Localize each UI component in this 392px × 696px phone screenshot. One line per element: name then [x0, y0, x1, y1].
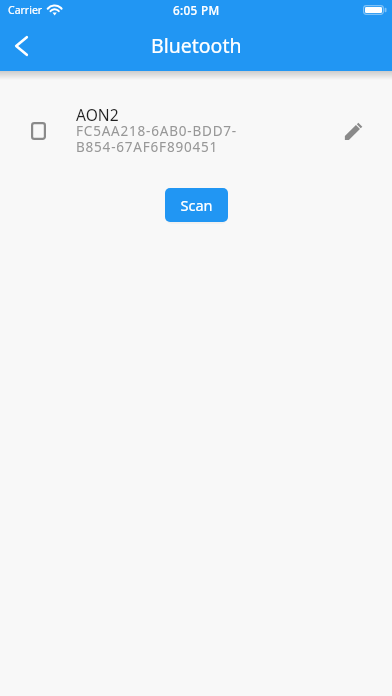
button[interactable]: Edit: [332, 110, 376, 152]
button[interactable]: Select device: [18, 110, 58, 152]
staticText: Bluetooth: [151, 32, 242, 59]
staticText: Scan: [180, 195, 213, 215]
button[interactable]: Select device: [0, 100, 392, 162]
staticText: Carrier: [8, 3, 43, 17]
staticText: 6:05 PM: [173, 2, 220, 18]
staticText: FC5AA218-6AB0-BDD7-B854-67AF6F890451: [76, 122, 252, 156]
button[interactable]: Back: [0, 20, 42, 71]
staticText: AON2: [76, 104, 119, 125]
button[interactable]: Scan: [165, 188, 228, 222]
